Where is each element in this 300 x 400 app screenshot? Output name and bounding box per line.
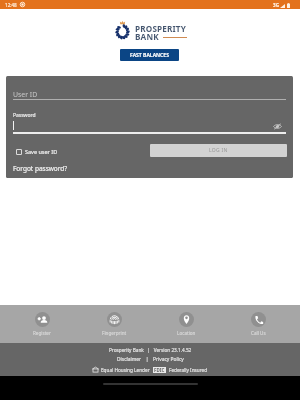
staticText: Save user ID bbox=[25, 148, 58, 155]
staticText: Password bbox=[13, 112, 36, 119]
button[interactable]: Fingerprint bbox=[78, 305, 150, 343]
button[interactable]: Show password bbox=[270, 119, 284, 133]
staticText: | bbox=[142, 356, 153, 363]
staticText: Location bbox=[177, 330, 196, 336]
button[interactable]: Forgot password? bbox=[13, 164, 68, 173]
staticText: Register bbox=[33, 330, 51, 336]
staticText: 3G bbox=[273, 2, 279, 8]
staticText: PROSPERITY bbox=[135, 23, 187, 34]
button[interactable]: Call Us bbox=[222, 305, 294, 343]
staticText: BANK bbox=[135, 31, 159, 42]
staticText: Equal Housing Lender bbox=[101, 367, 150, 373]
button[interactable]: Register bbox=[6, 305, 78, 343]
button[interactable]: Privacy Policy bbox=[153, 356, 184, 363]
staticText: Prosperity Bank | Version 23.1.4.52 bbox=[109, 347, 192, 353]
staticText: LOG IN bbox=[209, 147, 228, 154]
staticText: 12:48 bbox=[5, 2, 17, 8]
button[interactable]: LOG IN bbox=[150, 144, 287, 157]
staticText: FDIC bbox=[154, 367, 165, 373]
staticText: Call Us bbox=[251, 330, 266, 336]
button[interactable]: Disclaimer bbox=[117, 356, 142, 363]
staticText: Fingerprint bbox=[102, 330, 127, 336]
staticText: FAST BALANCES bbox=[130, 52, 170, 59]
staticText: Federally Insured bbox=[169, 367, 208, 373]
button[interactable]: Save user ID bbox=[16, 148, 58, 155]
button[interactable]: Location bbox=[150, 305, 222, 343]
staticText: User ID bbox=[13, 90, 38, 99]
button[interactable]: FAST BALANCES bbox=[120, 49, 179, 61]
